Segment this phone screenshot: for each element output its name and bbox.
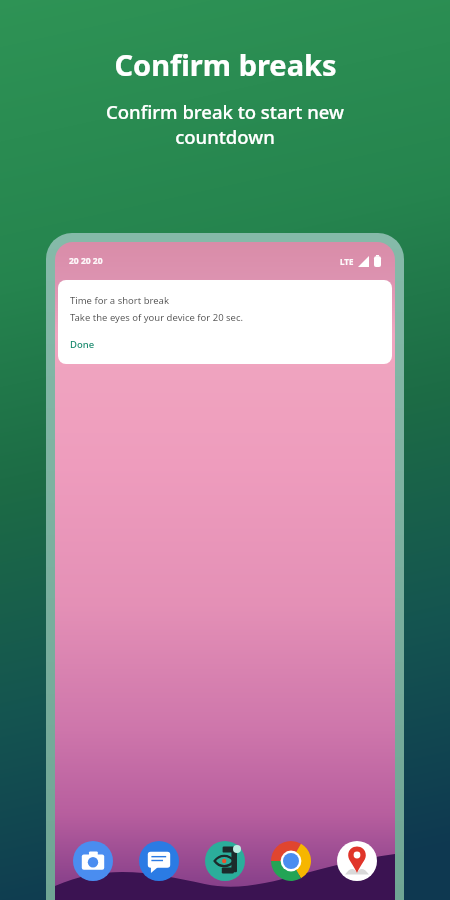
- button[interactable]: Time for a short break: [58, 280, 392, 364]
- button[interactable]: Camera: [71, 839, 115, 883]
- staticText: Take the eyes of your device for 20 sec.: [70, 311, 244, 324]
- staticText: Confirm break to start new countdown: [24, 99, 426, 149]
- button[interactable]: Maps: [335, 839, 379, 883]
- staticText: 20 20 20: [69, 255, 103, 267]
- button[interactable]: Eye care: [203, 839, 247, 883]
- staticText: LTE: [340, 256, 354, 267]
- button[interactable]: Messages: [137, 839, 181, 883]
- staticText: Time for a short break: [70, 294, 169, 307]
- staticText: Done: [70, 338, 95, 351]
- button[interactable]: Chrome: [269, 839, 313, 883]
- staticText: Confirm breaks: [114, 45, 337, 84]
- button[interactable]: Done: [70, 338, 95, 351]
